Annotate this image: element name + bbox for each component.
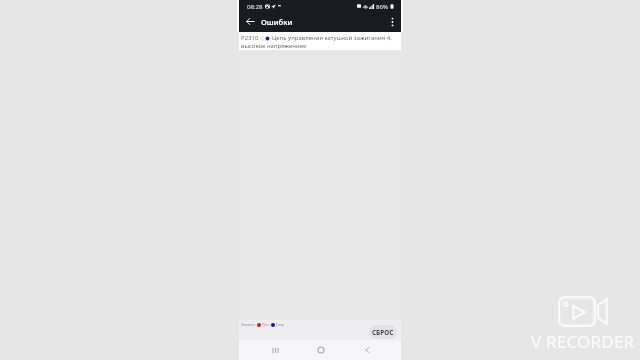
staticText: 08:28	[247, 2, 263, 10]
button[interactable]: Back	[357, 340, 377, 360]
button[interactable]: Recent apps	[265, 340, 285, 360]
staticText: Фатальн	[241, 322, 256, 327]
staticText: V RECORDER	[531, 330, 635, 353]
button[interactable]: Back	[241, 11, 260, 32]
button[interactable]: Home	[311, 340, 331, 360]
button[interactable]: More options	[383, 11, 401, 32]
staticText: Ошибки	[261, 17, 293, 27]
button[interactable]: P2310 oo Цепь управления катушкой зажига…	[239, 32, 401, 50]
button[interactable]: СБРОС	[369, 325, 397, 339]
staticText: Сохр	[276, 322, 284, 327]
staticText: 86%	[376, 2, 389, 10]
staticText: СБРОС	[372, 328, 394, 337]
staticText: Пост	[262, 322, 270, 327]
staticText: P2310 oo Цепь управления катушкой зажига…	[241, 34, 403, 49]
